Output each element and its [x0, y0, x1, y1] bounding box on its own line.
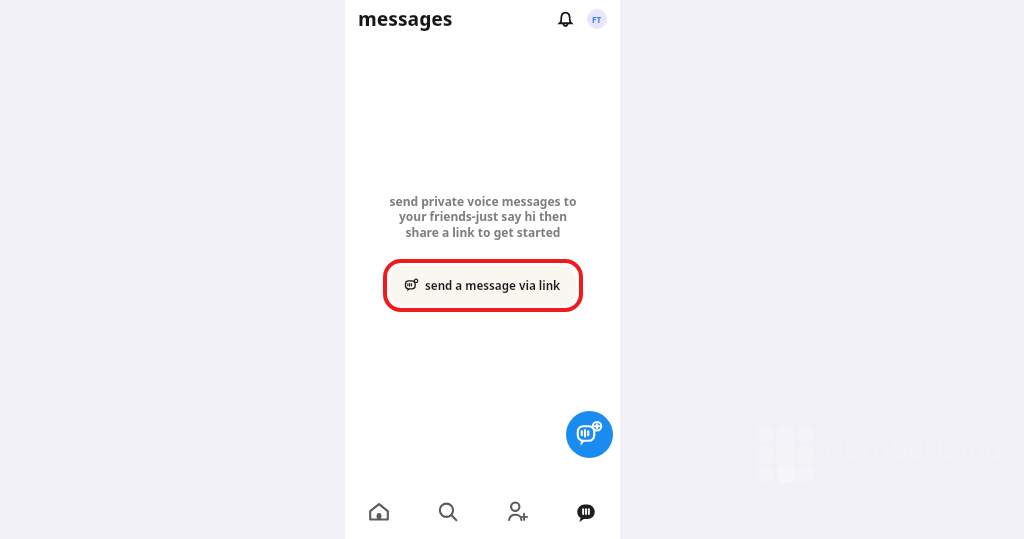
staticText: messages [358, 6, 453, 32]
button[interactable]: New voice message [566, 411, 613, 458]
button[interactable]: Add friend [482, 484, 551, 539]
button[interactable]: Messages [551, 484, 620, 539]
button[interactable]: Notifications [551, 5, 579, 33]
staticText: send a message via link [425, 278, 561, 294]
button[interactable]: Home [345, 484, 413, 539]
button[interactable]: send a message via link [390, 266, 576, 305]
staticText: FT [592, 14, 602, 25]
button[interactable]: Profile FT [587, 9, 607, 29]
staticText: send private voice messages to your frie… [385, 193, 581, 241]
button[interactable]: Search [413, 484, 482, 539]
